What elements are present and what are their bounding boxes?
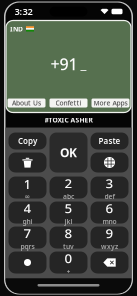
button[interactable]: Paste [90,132,128,149]
staticText: IND [10,24,23,33]
staticText: About Us [12,99,41,107]
staticText: 2 [64,174,72,192]
staticText: ghi [22,217,32,226]
staticText: + [66,267,70,276]
staticText: ∞ [24,193,30,200]
button[interactable]: 3 [90,176,128,198]
button[interactable]: 0 [49,251,87,273]
button[interactable]: OK [49,132,87,172]
staticText: 4 [23,199,31,217]
button[interactable]: 2 [49,176,87,198]
staticText: 7 [23,224,31,242]
button[interactable]: 8 [49,226,87,248]
button[interactable]: Star [8,251,46,273]
staticText: jkl [64,217,72,226]
staticText: 8 [64,224,72,242]
button[interactable]: Confetti [49,98,87,107]
button[interactable]: Clear [8,152,46,172]
staticText: 5 [64,199,72,217]
staticText: More Apps [93,99,127,107]
button[interactable]: Change keyboard [90,152,128,172]
button[interactable]: More Apps [91,98,129,107]
staticText: abc [63,192,74,201]
staticText: OK [60,144,77,160]
staticText: 9 [105,224,113,242]
staticText: 3 [105,174,113,192]
staticText: wxyz [101,242,118,251]
staticText: mno [102,217,116,226]
staticText: #TOXIC ASHER [44,116,92,124]
staticText: tuv [63,242,74,251]
staticText: _ [80,55,86,73]
button[interactable]: 1 [8,176,46,198]
button[interactable]: 5 [49,201,87,223]
button[interactable]: 7 [8,226,46,248]
button[interactable]: About Us [7,98,45,107]
staticText: pqrs [20,242,34,251]
staticText: Paste [98,136,120,146]
staticText: def [104,192,114,201]
staticText: 6 [105,199,113,217]
button[interactable]: 9 [90,226,128,248]
staticText: 0 [64,249,72,267]
staticText: 3:32 [14,5,32,18]
button[interactable]: 6 [90,201,128,223]
staticText: Confetti [55,99,81,107]
button[interactable]: Copy [8,132,46,149]
button[interactable]: Delete [90,251,128,273]
staticText: +91 [50,53,77,74]
staticText: Copy [18,136,37,146]
staticText: 1 [23,175,31,193]
button[interactable]: 4 [8,201,46,223]
